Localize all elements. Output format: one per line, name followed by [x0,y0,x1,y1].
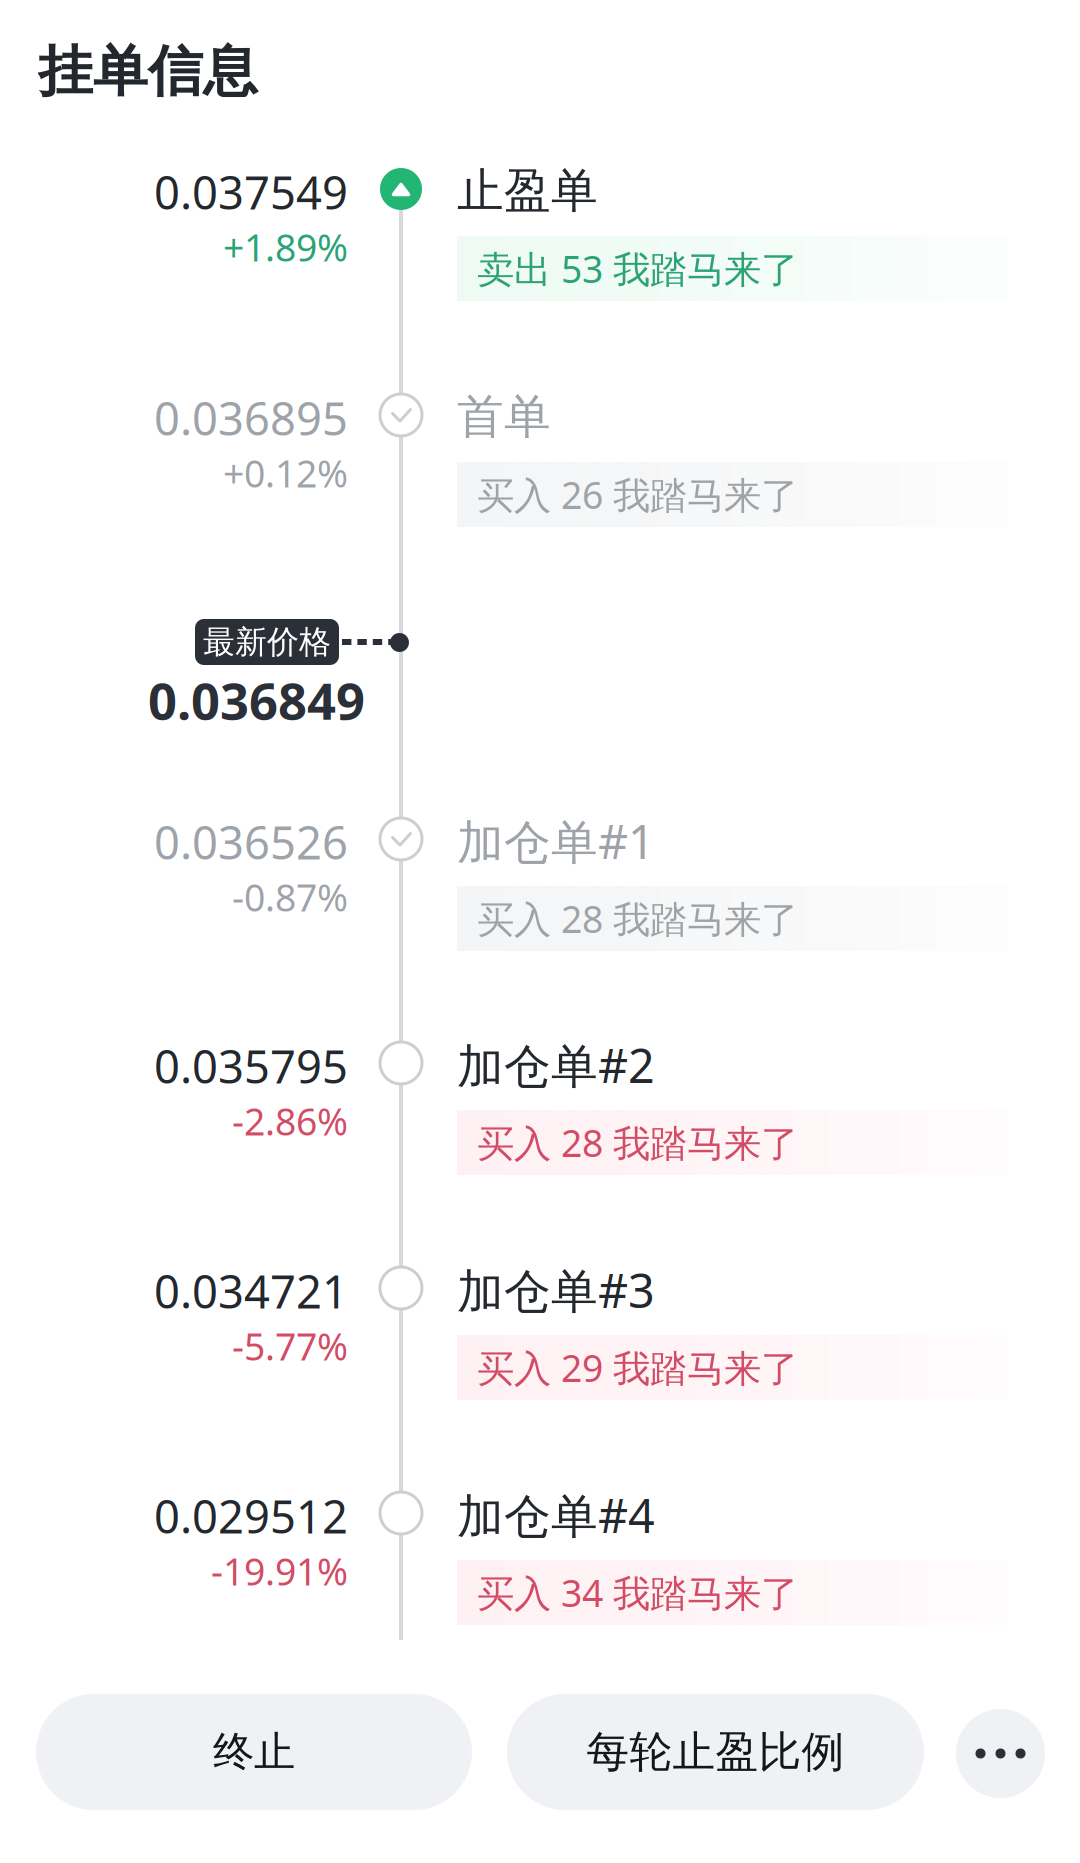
staticText: 每轮止盈比例 [586,1726,844,1778]
staticText: 0.034721 [154,1261,348,1321]
staticText: 0.029512 [154,1486,348,1546]
staticText: 0.036849 [148,666,365,734]
button[interactable]: 每轮止盈比例 [507,1694,924,1810]
staticText: 挂单信息 [38,38,258,105]
button[interactable]: 终止 [36,1694,472,1810]
staticText: 0.036526 [154,812,348,872]
staticText: 买入 28 我踏马来了 [477,1118,798,1167]
staticText: 0.036895 [154,388,348,448]
staticText: -2.86% [232,1096,348,1146]
staticText: 买入 34 我踏马来了 [477,1568,798,1617]
staticText: 0.037549 [154,162,348,222]
staticText: 加仓单#2 [457,1034,655,1096]
staticText: +1.89% [223,222,348,272]
staticText: 最新价格 [203,622,331,662]
staticText: 买入 26 我踏马来了 [477,470,798,519]
staticText: -0.87% [232,872,348,922]
staticText: 买入 28 我踏马来了 [477,894,798,943]
staticText: 加仓单#4 [457,1484,655,1546]
staticText: -19.91% [211,1546,348,1596]
staticText: -5.77% [232,1321,348,1371]
staticText: 买入 29 我踏马来了 [477,1343,798,1392]
staticText: 加仓单#3 [457,1259,655,1321]
staticText: 加仓单#1 [457,810,655,872]
button[interactable]: More options [956,1709,1045,1798]
staticText: 0.035795 [154,1036,348,1096]
staticText: 终止 [213,1727,295,1777]
staticText: +0.12% [223,448,348,498]
staticText: 卖出 53 我踏马来了 [477,244,798,293]
staticText: 止盈单 [457,162,598,220]
staticText: 首单 [457,388,551,446]
